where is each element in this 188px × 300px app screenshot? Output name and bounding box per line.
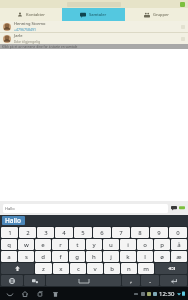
staticText: r [59, 241, 62, 249]
button[interactable]: å [171, 239, 187, 250]
button[interactable]: Grupper [125, 8, 188, 21]
button[interactable]: h [86, 251, 102, 262]
staticText: 8 [138, 229, 142, 237]
button[interactable]: d [35, 251, 51, 262]
staticText: e [41, 241, 45, 249]
button[interactable]: j [103, 251, 119, 262]
button[interactable]: x [53, 263, 69, 274]
button[interactable]: 5 [74, 227, 92, 238]
staticText: y [92, 241, 96, 249]
button[interactable]: æ [171, 251, 187, 262]
button[interactable]: Settings [24, 275, 45, 286]
staticText: ø [160, 253, 164, 261]
button[interactable]: a [1, 251, 17, 262]
button[interactable]: Samtaler [62, 8, 125, 21]
staticText: Hallo [5, 216, 22, 225]
staticText: Hallo [5, 206, 15, 211]
button[interactable]: 4 [55, 227, 73, 238]
button[interactable]: 0 [169, 227, 187, 238]
button[interactable]: q [1, 239, 17, 250]
staticText: b [110, 265, 114, 273]
button[interactable]: p [154, 239, 170, 250]
button[interactable]: Screenshot [51, 290, 59, 298]
button[interactable]: 6 [93, 227, 111, 238]
staticText: 1 [8, 229, 12, 237]
button[interactable]: 8 [131, 227, 149, 238]
button[interactable]: v [87, 263, 103, 274]
staticText: Klikk på et av navnene dine for å starte… [2, 45, 78, 49]
button[interactable]: Change language [1, 275, 23, 286]
button[interactable]: Notifications [133, 291, 139, 297]
button[interactable]: Hallo [2, 216, 25, 225]
staticText: j [110, 253, 112, 261]
staticText: n [127, 265, 131, 273]
button[interactable]: r [52, 239, 68, 250]
button[interactable]: Recent apps [36, 290, 44, 298]
button[interactable]: Henning Stormo [0, 21, 188, 32]
button[interactable]: 1 [1, 227, 18, 238]
staticText: æ [176, 253, 182, 261]
button[interactable]: 7 [112, 227, 130, 238]
button[interactable]: Emoji [171, 205, 177, 211]
staticText: f [59, 253, 62, 261]
button[interactable]: y [86, 239, 102, 250]
button[interactable]: k [120, 251, 136, 262]
button[interactable]: z [35, 263, 52, 274]
staticText: g [75, 253, 79, 261]
button[interactable]: i [120, 239, 136, 250]
button[interactable]: Enter [160, 275, 187, 286]
button[interactable]: t [69, 239, 85, 250]
staticText: k [126, 253, 130, 261]
staticText: Kontakter [26, 12, 46, 17]
staticText: , [130, 277, 132, 285]
staticText: +4796758491 [14, 27, 37, 32]
staticText: Samtaler [89, 12, 107, 17]
button[interactable]: . [141, 275, 159, 286]
staticText: Grupper [153, 12, 170, 17]
staticText: s [25, 253, 28, 261]
button[interactable]: ø [154, 251, 170, 262]
button[interactable]: n [121, 263, 137, 274]
staticText: Henning Stormo [14, 21, 46, 26]
button[interactable]: w [18, 239, 34, 250]
button[interactable]: Kontakter [0, 8, 62, 21]
staticText: 5 [81, 229, 85, 237]
staticText: u [109, 241, 113, 249]
button[interactable]: u [103, 239, 119, 250]
button[interactable]: f [52, 251, 68, 262]
staticText: l [144, 253, 146, 261]
button[interactable]: c [70, 263, 86, 274]
button[interactable]: l [137, 251, 153, 262]
staticText: c [77, 265, 80, 273]
staticText: 3 [44, 229, 48, 237]
staticText: x [59, 265, 63, 273]
staticText: Jarle [14, 33, 23, 38]
staticText: w [24, 241, 29, 249]
button[interactable]: Jarle [0, 33, 188, 44]
button[interactable]: Send [179, 205, 185, 211]
button[interactable]: Home [21, 290, 29, 298]
button[interactable]: Status [180, 2, 185, 7]
staticText: a [7, 253, 11, 261]
button[interactable]: 3 [37, 227, 54, 238]
staticText: 9 [157, 229, 161, 237]
button[interactable]: Back [6, 290, 14, 298]
button[interactable]: 2 [19, 227, 36, 238]
button[interactable]: Backspace [155, 263, 187, 274]
button[interactable]: o [137, 239, 153, 250]
button[interactable]: m [138, 263, 154, 274]
button[interactable]: g [69, 251, 85, 262]
button[interactable]: , [122, 275, 140, 286]
button[interactable]: Shift [1, 263, 34, 274]
staticText: 7 [119, 229, 123, 237]
button[interactable]: Hallo [3, 204, 168, 213]
button[interactable]: 9 [150, 227, 168, 238]
button[interactable]: b [104, 263, 120, 274]
button[interactable]: s [18, 251, 34, 262]
staticText: q [7, 241, 11, 249]
button[interactable]: Space [46, 275, 121, 286]
button[interactable]: e [35, 239, 51, 250]
